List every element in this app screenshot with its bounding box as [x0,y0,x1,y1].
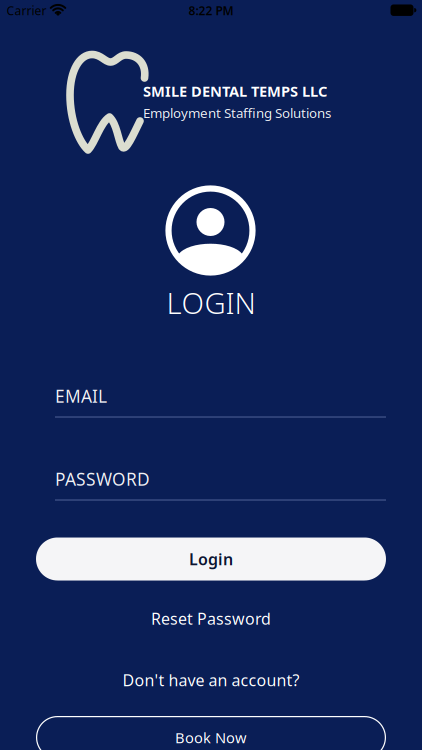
button[interactable]: PASSWORD [55,467,386,501]
staticText: Carrier [6,3,46,19]
button[interactable]: Login [36,537,386,580]
button[interactable]: EMAIL [55,384,386,418]
staticText: LOGIN [166,283,255,322]
button[interactable]: Book Now [36,716,386,750]
staticText: Reset Password [151,608,271,629]
button[interactable]: Reset Password [151,608,271,629]
staticText: EMAIL [55,384,107,407]
staticText: PASSWORD [55,467,150,490]
staticText: 8:22 PM [188,3,233,19]
staticText: Don't have an account? [122,669,299,691]
staticText: Login [189,548,233,570]
staticText: SMILE DENTAL TEMPS LLC [143,81,327,101]
staticText: Employment Staffing Solutions [143,104,331,122]
staticText: Book Now [175,728,247,747]
